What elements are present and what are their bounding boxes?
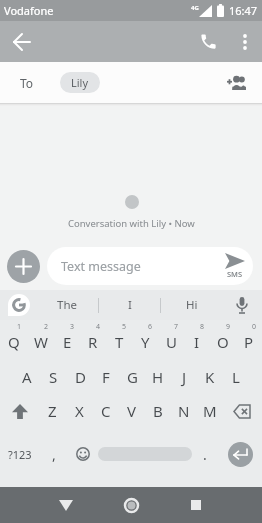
button[interactable]: 0 (236, 320, 262, 357)
staticText: . (203, 445, 207, 464)
staticText: L (232, 367, 240, 387)
staticText: Z (48, 401, 57, 421)
button[interactable]: 5 (106, 320, 132, 357)
staticText: O (217, 332, 229, 352)
staticText: B (153, 401, 163, 421)
button[interactable]: L (223, 361, 249, 393)
button[interactable]: Lily (60, 72, 100, 93)
staticText: 8 (200, 322, 205, 332)
staticText: Lily (71, 75, 89, 90)
button[interactable]: Hi (161, 290, 222, 320)
staticText: I (194, 332, 200, 352)
staticText: C (101, 401, 111, 421)
button[interactable]: D (67, 361, 93, 393)
button[interactable]: Z (39, 393, 66, 429)
button[interactable]: 4 (80, 320, 106, 357)
staticText: N (178, 401, 190, 421)
staticText: J (182, 367, 187, 387)
button[interactable] (228, 21, 262, 62)
staticText: W (34, 332, 48, 352)
staticText: 1 (17, 322, 22, 332)
staticText: G (127, 367, 138, 387)
staticText: 6 (148, 322, 153, 332)
button[interactable] (98, 429, 192, 479)
button[interactable] (38, 487, 94, 523)
button[interactable]: , (40, 429, 68, 479)
button[interactable]: K (197, 361, 223, 393)
staticText: 4 (96, 322, 101, 332)
staticText: E (63, 332, 72, 352)
button[interactable]: 7 (158, 320, 184, 357)
staticText: 2 (44, 322, 49, 332)
staticText: Vodafone (4, 3, 54, 18)
staticText: Text message (61, 258, 141, 275)
staticText: Y (141, 332, 150, 352)
button[interactable]: 3 (54, 320, 80, 357)
button[interactable]: X (66, 393, 93, 429)
button[interactable]: 8 (184, 320, 210, 357)
button[interactable]: A (13, 361, 40, 393)
button[interactable] (188, 21, 228, 62)
button[interactable]: G (119, 361, 145, 393)
staticText: The (57, 297, 77, 313)
staticText: S (49, 367, 58, 387)
button[interactable]: 6 (132, 320, 158, 357)
button[interactable]: 2 (27, 320, 54, 357)
button[interactable]: B (145, 393, 171, 429)
button[interactable] (218, 429, 262, 479)
button[interactable] (222, 290, 262, 320)
staticText: V (127, 401, 137, 421)
staticText: 5 (122, 322, 127, 332)
button[interactable]: H (145, 361, 171, 393)
button[interactable]: J (171, 361, 197, 393)
button[interactable]: 1 (0, 320, 27, 357)
staticText: 4G (191, 4, 199, 12)
button[interactable] (0, 393, 39, 429)
staticText: X (75, 401, 84, 421)
staticText: Hi (186, 297, 198, 313)
button[interactable]: S (40, 361, 67, 393)
button[interactable]: N (171, 393, 197, 429)
staticText: I (128, 297, 132, 313)
staticText: P (244, 332, 254, 352)
staticText: Q (8, 332, 20, 352)
button[interactable]: ?123 (0, 429, 40, 479)
staticText: A (22, 367, 32, 387)
staticText: 9 (226, 322, 231, 332)
button[interactable] (7, 250, 40, 283)
staticText: , (52, 445, 56, 464)
button[interactable]: F (93, 361, 119, 393)
button[interactable]: V (119, 393, 145, 429)
button[interactable] (168, 487, 224, 523)
staticText: U (166, 332, 177, 352)
button[interactable] (0, 290, 37, 320)
staticText: F (102, 367, 110, 387)
button[interactable]: The (36, 290, 98, 320)
button[interactable]: C (93, 393, 119, 429)
staticText: D (75, 367, 86, 387)
button[interactable]: I (99, 290, 160, 320)
staticText: M (203, 401, 217, 421)
button[interactable] (223, 393, 262, 429)
button[interactable] (103, 487, 159, 523)
button[interactable]: M (197, 393, 223, 429)
staticText: 7 (174, 322, 179, 332)
staticText: H (152, 367, 164, 387)
staticText: To (20, 75, 34, 91)
staticText: SMS (227, 269, 243, 279)
button[interactable] (68, 429, 98, 479)
button[interactable]: . (192, 429, 218, 479)
button[interactable]: Text message (47, 247, 253, 285)
button[interactable]: 9 (210, 320, 236, 357)
staticText: ?123 (8, 447, 32, 462)
staticText: R (88, 332, 98, 352)
staticText: 3 (70, 322, 75, 332)
button[interactable] (218, 62, 254, 103)
staticText: 16:47 (229, 3, 258, 18)
button[interactable] (0, 21, 44, 62)
staticText: 0 (252, 322, 257, 332)
staticText: Conversation with Lily • Now (68, 217, 195, 230)
staticText: T (115, 332, 124, 352)
staticText: K (205, 367, 215, 387)
